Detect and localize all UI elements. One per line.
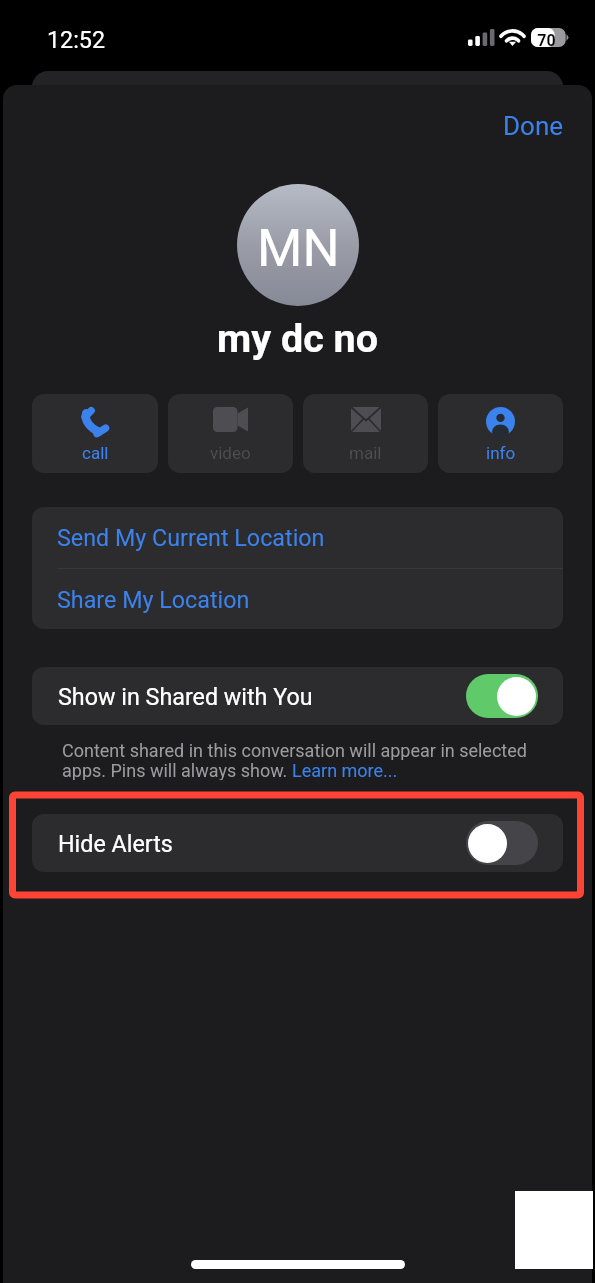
staticText: Show in Shared with You [58,683,466,710]
staticText: 70 [537,31,556,50]
button[interactable]: Send My Current Location [32,507,563,568]
staticText: MN [257,218,340,279]
button[interactable]: Learn more... [292,760,398,780]
button[interactable]: call [32,394,158,473]
staticText: Done [503,111,564,141]
staticText: Content shared in this conversation will… [62,740,527,760]
staticText: Hide Alerts [58,830,466,857]
staticText: mail [349,443,382,463]
button[interactable]: Share My Location [32,569,563,629]
button[interactable]: Done [489,101,578,151]
staticText: video [210,443,251,463]
button[interactable]: mail [303,394,428,473]
button[interactable]: Show in Shared with You [32,667,563,725]
staticText: apps. Pins will always show. [62,760,292,780]
staticText: info [486,443,516,463]
staticText: Send My Current Location [57,524,325,551]
staticText: call [82,443,109,463]
button[interactable]: Hide Alerts [32,814,563,872]
button[interactable]: Switch off [466,821,538,865]
staticText: Share My Location [57,586,250,613]
staticText: 12:52 [47,26,106,53]
staticText: my dc no [217,315,378,361]
button[interactable]: video [168,394,293,473]
button[interactable]: Contact photo [237,184,359,306]
button[interactable]: info [438,394,563,473]
button[interactable]: Switch on [466,674,538,718]
